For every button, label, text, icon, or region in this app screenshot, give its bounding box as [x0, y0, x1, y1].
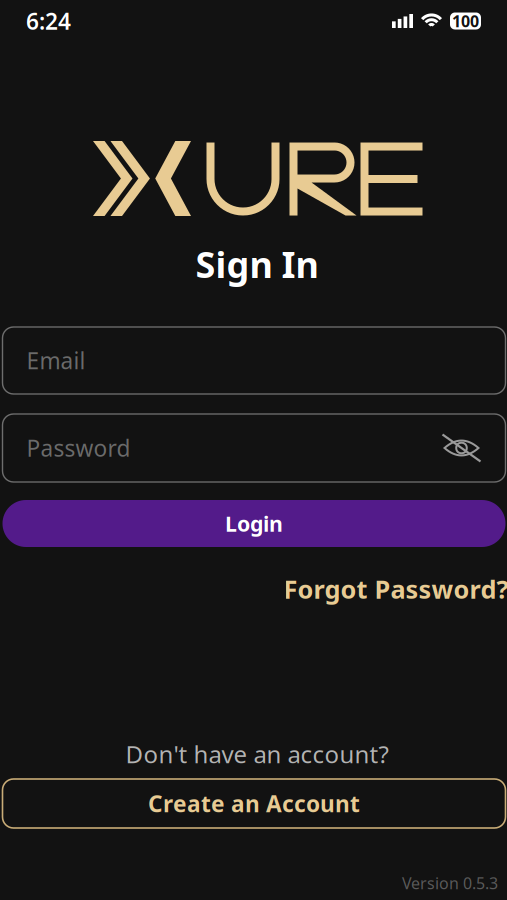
staticText: Email [26, 345, 85, 375]
button[interactable]: Forgot Password? [283, 574, 507, 604]
staticText: 6:24 [26, 6, 71, 36]
staticText: Forgot Password? [283, 572, 507, 606]
staticText: 100 [452, 10, 479, 32]
staticText: Sign In [195, 240, 318, 288]
staticText: Password [26, 433, 130, 463]
staticText: Version 0.5.3 [402, 872, 498, 894]
staticText: Create an Account [148, 788, 360, 818]
staticText: Login [225, 509, 283, 538]
button[interactable]: Login [2, 500, 505, 547]
button[interactable]: Create an Account [2, 779, 505, 828]
staticText: Don't have an account? [125, 738, 388, 770]
